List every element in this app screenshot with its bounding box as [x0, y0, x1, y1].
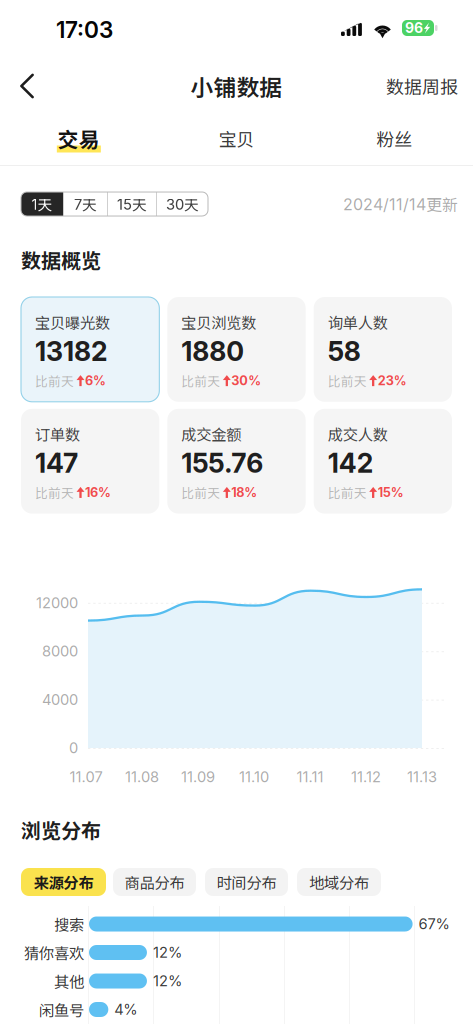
staticText: 交易: [58, 123, 100, 153]
button[interactable]: 时间分布: [205, 868, 288, 896]
staticText: 13182: [35, 335, 108, 367]
staticText: 比前天: [35, 483, 74, 502]
staticText: 订单数: [35, 423, 80, 445]
staticText: 闲鱼号: [39, 998, 84, 1021]
button[interactable]: 商品分布: [113, 868, 196, 896]
button[interactable]: 30天: [157, 192, 208, 216]
staticText: 4000: [42, 691, 78, 708]
button[interactable]: 订单数: [21, 409, 159, 514]
staticText: 16%: [85, 485, 111, 500]
button[interactable]: 来源分布: [21, 868, 106, 896]
staticText: 其他: [54, 970, 84, 992]
staticText: 67%: [419, 915, 450, 933]
staticText: 地域分布: [309, 871, 369, 893]
staticText: 11.07: [69, 768, 102, 786]
staticText: 11.13: [407, 768, 437, 786]
staticText: 比前天: [181, 371, 220, 390]
staticText: 23%: [378, 373, 407, 388]
staticText: 2024/11/14更新: [343, 192, 458, 216]
staticText: 宝贝曝光数: [35, 311, 110, 333]
staticText: 6%: [85, 373, 106, 388]
staticText: 15%: [378, 485, 404, 500]
staticText: 11.11: [296, 768, 323, 786]
staticText: 12%: [153, 972, 182, 990]
staticText: 58: [328, 335, 361, 367]
button[interactable]: 成交人数: [314, 409, 452, 514]
staticText: 比前天: [328, 371, 367, 390]
staticText: 宝贝: [218, 125, 254, 152]
staticText: 0: [69, 739, 78, 757]
staticText: 1天: [31, 193, 52, 215]
button[interactable]: 宝贝浏览数: [167, 297, 306, 402]
staticText: 15天: [117, 193, 147, 215]
staticText: 30%: [231, 373, 261, 388]
button[interactable]: 地域分布: [297, 868, 381, 896]
button[interactable]: 15天: [108, 192, 156, 216]
staticText: 小铺数据: [190, 70, 282, 102]
staticText: 4%: [114, 1001, 137, 1018]
button[interactable]: 交易: [0, 112, 158, 165]
staticText: 猜你喜欢: [24, 941, 84, 964]
button[interactable]: 宝贝: [158, 112, 315, 165]
button[interactable]: 1天: [21, 192, 63, 216]
button[interactable]: 返回: [0, 61, 54, 110]
staticText: 粉丝: [376, 125, 412, 152]
staticText: 商品分布: [124, 871, 184, 893]
staticText: 浏览分布: [21, 815, 101, 844]
staticText: 11.12: [351, 768, 381, 786]
staticText: 96: [405, 19, 423, 36]
staticText: 12%: [153, 944, 182, 961]
staticText: 11.09: [181, 768, 215, 786]
button[interactable]: 粉丝: [315, 112, 473, 165]
staticText: 147: [35, 447, 78, 479]
staticText: 比前天: [35, 371, 74, 390]
staticText: 11.10: [239, 768, 269, 786]
staticText: 7天: [74, 193, 97, 215]
button[interactable]: 成交金额: [167, 409, 306, 514]
staticText: 11.08: [125, 768, 159, 786]
staticText: 142: [328, 447, 374, 479]
staticText: 数据概览: [21, 245, 101, 274]
staticText: 比前天: [181, 483, 220, 502]
staticText: 数据周报: [386, 73, 458, 99]
staticText: 成交金额: [181, 423, 241, 445]
staticText: 1880: [181, 335, 244, 367]
staticText: 比前天: [328, 483, 367, 502]
staticText: 来源分布: [33, 871, 93, 893]
button[interactable]: 7天: [64, 192, 107, 216]
staticText: 时间分布: [216, 871, 276, 893]
staticText: 12000: [36, 594, 78, 612]
staticText: 155.76: [181, 447, 263, 479]
staticText: 成交人数: [328, 423, 388, 445]
button[interactable]: 询单人数: [314, 297, 452, 402]
button[interactable]: 宝贝曝光数: [21, 297, 159, 402]
staticText: 宝贝浏览数: [181, 311, 256, 333]
staticText: 询单人数: [328, 311, 388, 333]
button[interactable]: 数据周报: [370, 59, 473, 113]
staticText: 18%: [231, 485, 257, 500]
staticText: 17:03: [56, 16, 113, 43]
staticText: 搜索: [54, 913, 84, 935]
staticText: 30天: [166, 193, 199, 215]
staticText: 8000: [42, 642, 78, 660]
